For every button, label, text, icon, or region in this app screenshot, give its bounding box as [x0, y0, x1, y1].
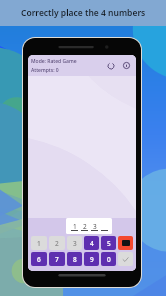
- button[interactable]: 1: [31, 236, 47, 250]
- staticText: 5: [107, 239, 111, 248]
- button[interactable]: Submit: [118, 252, 133, 266]
- button[interactable]: 6: [31, 252, 47, 266]
- button[interactable]: 5: [101, 236, 116, 250]
- button[interactable]: 2: [49, 236, 65, 250]
- staticText: 7: [55, 255, 59, 264]
- staticText: 2: [55, 239, 59, 248]
- staticText: 9: [90, 255, 94, 264]
- staticText: 2: [83, 222, 87, 229]
- staticText: Mode: Rated Game: [31, 58, 77, 65]
- button[interactable]: 7: [49, 252, 65, 266]
- button[interactable]: Restart: [105, 60, 116, 71]
- staticText: 4: [90, 239, 94, 248]
- staticText: 1: [73, 222, 77, 229]
- button[interactable]: 8: [67, 252, 82, 266]
- button[interactable]: 4: [84, 236, 99, 250]
- staticText: Attempts: 0: [31, 67, 59, 74]
- button[interactable]: 0: [101, 252, 116, 266]
- button[interactable]: 3: [67, 236, 82, 250]
- button[interactable]: Info: [121, 60, 132, 71]
- button[interactable]: 9: [84, 252, 99, 266]
- staticText: 6: [37, 255, 41, 264]
- staticText: Correctly place the 4 numbers: [21, 7, 146, 19]
- staticText: 1: [37, 239, 41, 248]
- staticText: 0: [107, 255, 111, 264]
- button[interactable]: Delete: [118, 236, 133, 250]
- staticText: 3: [93, 222, 97, 229]
- staticText: 8: [73, 255, 77, 264]
- staticText: 3: [73, 239, 77, 248]
